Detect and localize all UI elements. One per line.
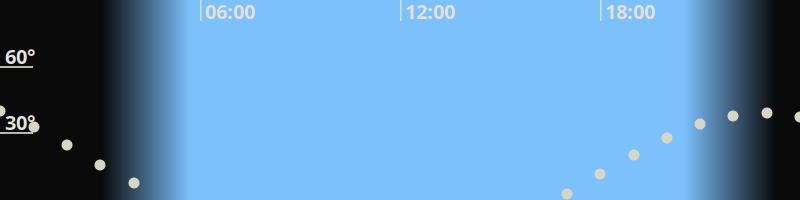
button[interactable]: Hourly temperature chart (0, 0, 800, 200)
staticText: 30° (5, 109, 35, 136)
staticText: 06:00 (205, 0, 255, 25)
staticText: 18:00 (605, 0, 655, 25)
staticText: 60° (5, 43, 35, 70)
staticText: 12:00 (405, 0, 455, 25)
